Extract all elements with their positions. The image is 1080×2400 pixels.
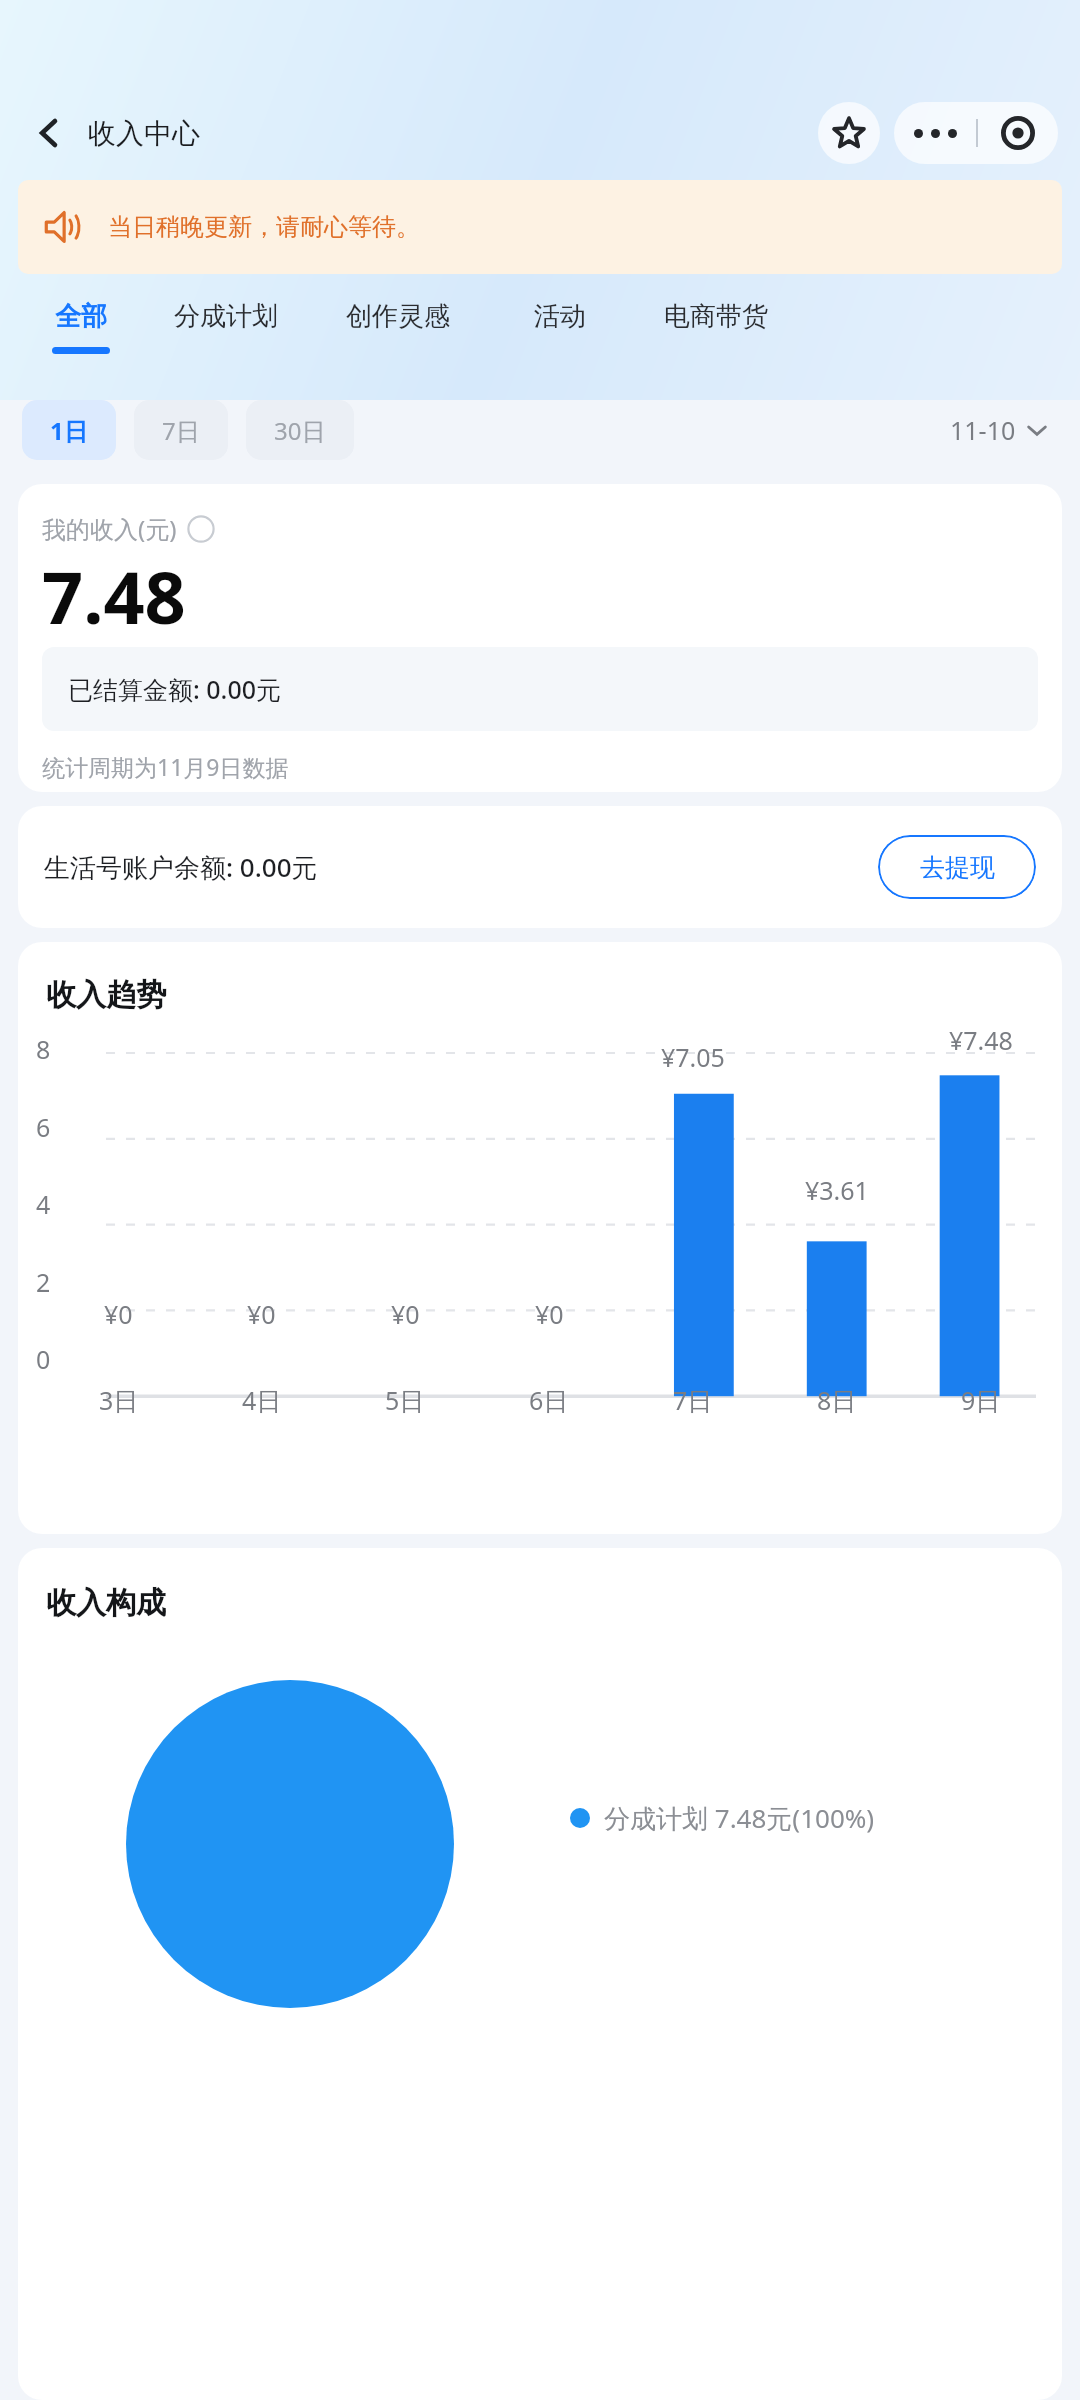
button[interactable]: Back [18,102,80,164]
staticText: 7日 [162,414,200,447]
staticText: ¥3.61 [805,1173,869,1207]
button[interactable]: 全部 [22,296,140,376]
staticText: 5日 [385,1383,425,1417]
staticText: 2 [36,1265,51,1299]
staticText: ¥7.05 [661,1040,725,1074]
staticText: 已结算金额: 0.00元 [68,672,282,706]
staticText: ¥7.48 [949,1023,1013,1057]
staticText: 3日 [99,1383,139,1417]
staticText: 6 [36,1110,51,1144]
staticText: 0 [36,1342,51,1376]
button[interactable]: Favorite [818,102,880,164]
staticText: 7.48 [42,547,186,645]
staticText: 活动 [534,300,586,333]
staticText: 收入构成 [46,1584,166,1622]
staticText: 生活号账户余额: 0.00元 [44,849,318,885]
button[interactable]: 我的收入(元) [18,484,1062,792]
button[interactable]: 7日 [134,400,228,460]
staticText: ¥0 [535,1297,564,1331]
button[interactable]: 生活号账户余额: 0.00元 [18,806,1062,928]
staticText: 11-10 [950,413,1016,447]
button[interactable]: 1日 [22,400,116,460]
staticText: 4 [36,1187,51,1221]
staticText: 30日 [274,414,326,447]
button[interactable]: 创作灵感 [312,296,484,376]
staticText: ¥0 [247,1297,276,1331]
staticText: ¥0 [391,1297,420,1331]
button[interactable]: 30日 [246,400,354,460]
staticText: 6日 [529,1383,569,1417]
button[interactable]: Close [978,102,1058,164]
staticText: 分成计划 7.48元(100%) [604,1800,875,1836]
staticText: 创作灵感 [346,300,450,333]
staticText: 收入趋势 [46,976,166,1014]
button[interactable]: 当日稍晚更新，请耐心等待。 [18,180,1062,274]
staticText: 1日 [50,414,88,447]
staticText: 当日稍晚更新，请耐心等待。 [108,212,420,242]
button[interactable]: 去提现 [878,835,1036,899]
staticText: 去提现 [920,852,995,883]
staticText: 统计周期为11月9日数据 [42,751,289,782]
staticText: 8日 [817,1383,857,1417]
staticText: 我的收入(元) [42,512,177,545]
staticText: 7日 [673,1383,713,1417]
button[interactable]: 电商带货 [636,296,796,376]
staticText: 9日 [961,1383,1001,1417]
button[interactable]: 收入趋势 [18,942,1062,1534]
staticText: 分成计划 [174,300,278,333]
staticText: 8 [36,1032,51,1066]
button[interactable]: 11-10 [940,405,1058,455]
button[interactable]: 活动 [484,296,636,376]
staticText: ¥0 [104,1297,133,1331]
staticText: 全部 [55,300,107,333]
button[interactable]: 分成计划 [140,296,312,376]
button[interactable]: More options [894,102,976,164]
staticText: 收入中心 [88,116,200,151]
button[interactable]: 收入构成 [18,1548,1062,2400]
staticText: 电商带货 [664,300,768,333]
staticText: 4日 [242,1383,282,1417]
